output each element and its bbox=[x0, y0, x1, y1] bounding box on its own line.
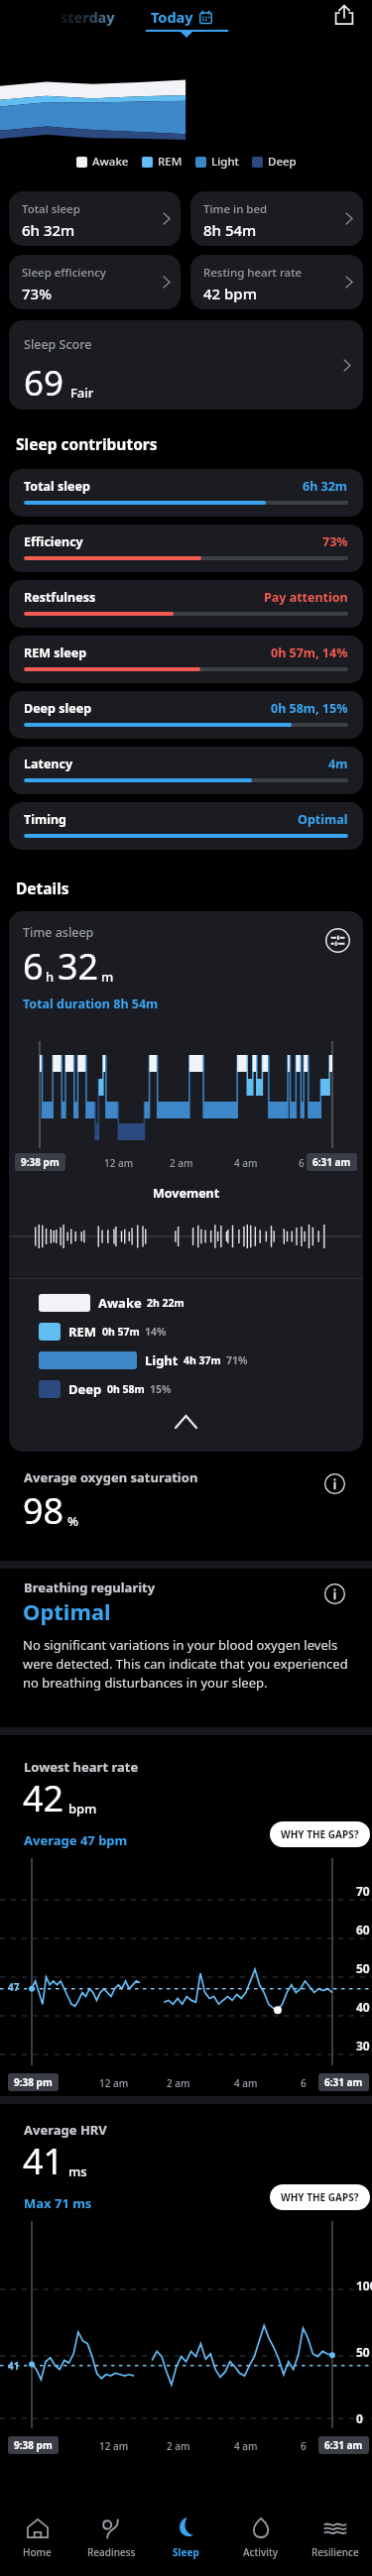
staticText: Average 47 bpm bbox=[24, 1831, 128, 1849]
button[interactable]: Restfulness bbox=[9, 580, 363, 628]
button[interactable]: sterday bbox=[26, 0, 115, 34]
staticText: 9:38 pm bbox=[14, 2438, 53, 2452]
staticText: Efficiency bbox=[24, 533, 83, 550]
staticText: 0h 57m, 14% bbox=[271, 644, 348, 661]
staticText: 4 am bbox=[234, 2439, 258, 2453]
staticText: 6 bbox=[301, 2439, 307, 2453]
button[interactable]: Home bbox=[0, 2499, 74, 2576]
staticText: 8h 54m bbox=[203, 220, 257, 240]
staticText: Max 71 ms bbox=[24, 2194, 92, 2212]
button[interactable]: Info bbox=[324, 1583, 345, 1604]
staticText: 40 bbox=[356, 1999, 370, 2015]
button[interactable]: Total sleep bbox=[9, 191, 181, 246]
staticText: 15% bbox=[150, 1382, 172, 1396]
staticText: 70 bbox=[356, 1883, 370, 1899]
staticText: Optimal bbox=[298, 811, 348, 828]
staticText: Sleep Score bbox=[24, 336, 92, 353]
staticText: 12 am bbox=[99, 2439, 129, 2453]
staticText: Average HRV bbox=[24, 2121, 107, 2139]
staticText: Today bbox=[151, 7, 193, 27]
staticText: 69 bbox=[24, 359, 64, 407]
staticText: 2 am bbox=[170, 1156, 193, 1170]
staticText: Resilience bbox=[311, 2545, 359, 2559]
staticText: 73% bbox=[22, 284, 52, 303]
staticText: 14% bbox=[145, 1325, 167, 1339]
staticText: 6 bbox=[23, 942, 44, 991]
staticText: Light bbox=[145, 1351, 179, 1369]
staticText: h bbox=[46, 968, 55, 986]
staticText: 4h 37m bbox=[184, 1353, 221, 1367]
staticText: 6:31 am bbox=[324, 2438, 363, 2452]
button[interactable]: REM sleep bbox=[9, 636, 363, 683]
staticText: Awake bbox=[98, 1294, 142, 1312]
button[interactable]: WHY THE GAPS? bbox=[270, 1821, 370, 1847]
staticText: 32 bbox=[58, 942, 99, 991]
staticText: Resting heart rate bbox=[203, 265, 303, 281]
staticText: Fair bbox=[70, 384, 94, 402]
staticText: 9:38 pm bbox=[14, 2075, 53, 2089]
staticText: 6h 32m bbox=[303, 478, 348, 495]
staticText: REM bbox=[68, 1323, 97, 1341]
staticText: 73% bbox=[322, 533, 348, 550]
staticText: 41 bbox=[23, 2137, 64, 2185]
button[interactable]: Latency bbox=[9, 747, 363, 794]
staticText: Lowest heart rate bbox=[24, 1758, 139, 1776]
staticText: 6h 32m bbox=[22, 220, 75, 240]
staticText: 30 bbox=[356, 2038, 370, 2053]
staticText: Deep sleep bbox=[24, 700, 92, 717]
staticText: 2 am bbox=[167, 2076, 190, 2090]
staticText: Sleep efficiency bbox=[22, 265, 106, 281]
staticText: 0 bbox=[356, 2410, 363, 2426]
staticText: Sleep contributors bbox=[16, 433, 158, 454]
button[interactable]: Sleep efficiency bbox=[9, 255, 181, 309]
staticText: ms bbox=[68, 2163, 87, 2180]
staticText: 98 bbox=[23, 1486, 64, 1535]
button[interactable]: Adjust sleep period bbox=[325, 928, 350, 953]
button[interactable]: WHY THE GAPS? bbox=[270, 2184, 370, 2210]
button[interactable]: Readiness bbox=[74, 2499, 149, 2576]
staticText: 9:38 pm bbox=[21, 1155, 60, 1169]
button[interactable]: Info bbox=[324, 1473, 345, 1494]
staticText: Sleep bbox=[173, 2545, 199, 2559]
staticText: 42 bpm bbox=[203, 284, 257, 303]
button[interactable]: Efficiency bbox=[9, 525, 363, 572]
button[interactable]: Total sleep bbox=[9, 469, 363, 517]
button[interactable]: Sleep bbox=[149, 2499, 223, 2576]
staticText: Readiness bbox=[87, 2545, 136, 2559]
staticText: Optimal bbox=[23, 1596, 111, 1626]
button[interactable]: Today bbox=[151, 1, 220, 33]
staticText: 6:31 am bbox=[312, 1155, 351, 1169]
button[interactable]: Resting heart rate bbox=[190, 255, 363, 309]
staticText: Home bbox=[23, 2545, 52, 2559]
button[interactable]: Time in bed bbox=[190, 191, 363, 246]
staticText: 12 am bbox=[104, 1156, 134, 1170]
staticText: WHY THE GAPS? bbox=[281, 1827, 359, 1841]
staticText: 6 bbox=[299, 1156, 305, 1170]
button[interactable]: Sleep Score bbox=[9, 320, 363, 410]
staticText: Deep bbox=[68, 1380, 102, 1398]
button[interactable]: Resilience bbox=[298, 2499, 372, 2576]
staticText: Pay attention bbox=[264, 589, 348, 606]
staticText: 0h 57m bbox=[102, 1325, 140, 1339]
staticText: Total sleep bbox=[22, 201, 80, 217]
staticText: Activity bbox=[243, 2545, 279, 2559]
button[interactable]: Deep sleep bbox=[9, 691, 363, 739]
button[interactable]: Share bbox=[324, 0, 364, 35]
staticText: 0h 58m bbox=[107, 1382, 145, 1396]
button[interactable]: Timing bbox=[9, 802, 363, 850]
staticText: 6 bbox=[301, 2076, 307, 2090]
staticText: Total sleep bbox=[24, 478, 90, 495]
staticText: 0h 58m, 15% bbox=[271, 700, 348, 717]
button[interactable]: Collapse bbox=[9, 1402, 363, 1442]
staticText: 50 bbox=[356, 2344, 370, 2360]
staticText: No significant variations in your blood … bbox=[23, 1636, 356, 1692]
staticText: Restfulness bbox=[24, 589, 96, 606]
staticText: 2 am bbox=[167, 2439, 190, 2453]
staticText: 2h 22m bbox=[147, 1296, 185, 1310]
button[interactable]: Activity bbox=[223, 2499, 298, 2576]
staticText: 71% bbox=[226, 1353, 248, 1367]
staticText: 4 am bbox=[234, 1156, 258, 1170]
staticText: Light bbox=[211, 154, 239, 170]
staticText: 42 bbox=[23, 1774, 64, 1822]
staticText: 6:31 am bbox=[324, 2075, 363, 2089]
